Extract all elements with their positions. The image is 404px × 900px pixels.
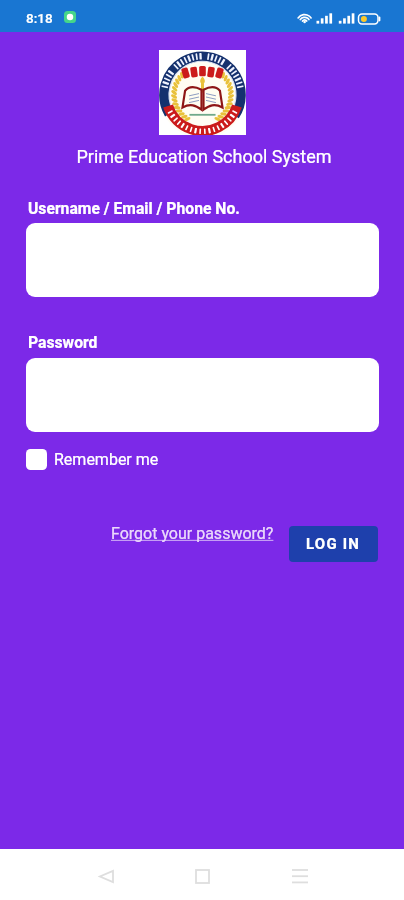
button[interactable]: Recent apps — [280, 856, 320, 896]
button[interactable]: Back — [86, 856, 126, 896]
staticText: Username / Email / Phone No. — [28, 199, 240, 217]
button[interactable]: Forgot your password? — [111, 524, 274, 543]
button[interactable] — [26, 358, 379, 432]
staticText: 8:18 — [26, 10, 53, 26]
button[interactable]: Home — [182, 856, 222, 896]
button[interactable] — [26, 223, 379, 297]
staticText: Remember me — [54, 450, 159, 469]
staticText: LOG IN — [306, 535, 361, 553]
staticText: Password — [28, 333, 98, 351]
staticText: Prime Education School System — [2, 146, 404, 167]
button[interactable]: LOG IN — [289, 526, 378, 562]
button[interactable]: Remember me — [26, 449, 159, 470]
